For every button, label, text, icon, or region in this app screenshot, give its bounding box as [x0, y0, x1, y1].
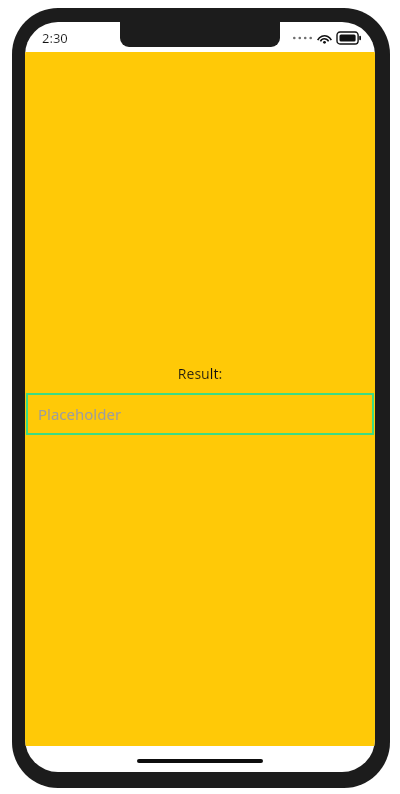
staticText: 2:30	[42, 29, 68, 47]
other: Cellular signal	[293, 34, 312, 42]
staticText: Result:	[25, 364, 375, 383]
other: Battery	[337, 32, 361, 44]
other: Wi-Fi	[317, 33, 332, 44]
button[interactable]: Placeholder	[26, 393, 374, 435]
staticText: Placeholder	[38, 404, 122, 424]
